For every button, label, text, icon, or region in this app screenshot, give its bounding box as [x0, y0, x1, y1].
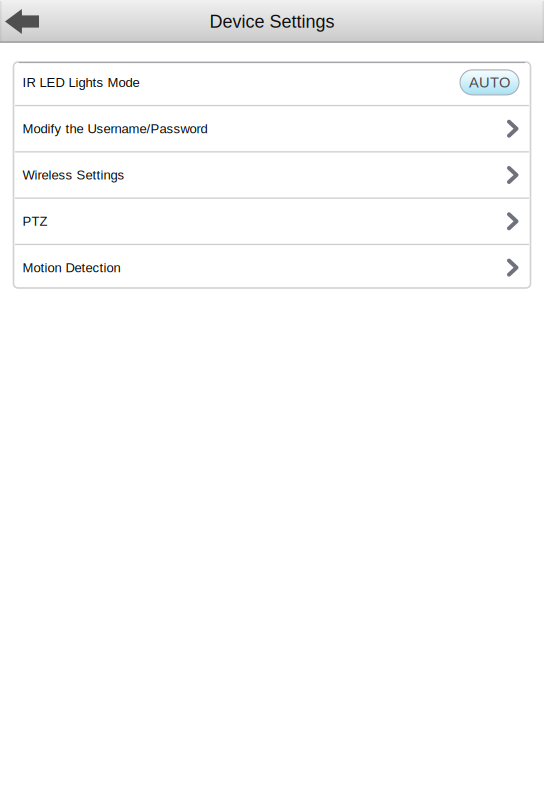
button[interactable]: IR LED Lights Mode — [13, 60, 530, 105]
staticText: Motion Detection — [22, 260, 120, 275]
staticText: PTZ — [22, 214, 47, 229]
button[interactable]: PTZ — [13, 199, 530, 244]
button[interactable]: Modify the Username/Password — [13, 106, 530, 151]
button[interactable]: Motion Detection — [13, 245, 530, 290]
staticText: Device Settings — [209, 11, 334, 31]
button[interactable]: Wireless Settings — [13, 152, 530, 197]
staticText: Modify the Username/Password — [22, 121, 207, 136]
button[interactable]: Back — [0, 0, 44, 43]
staticText: Wireless Settings — [22, 168, 124, 182]
staticText: IR LED Lights Mode — [22, 75, 139, 90]
staticText: AUTO — [469, 74, 510, 91]
